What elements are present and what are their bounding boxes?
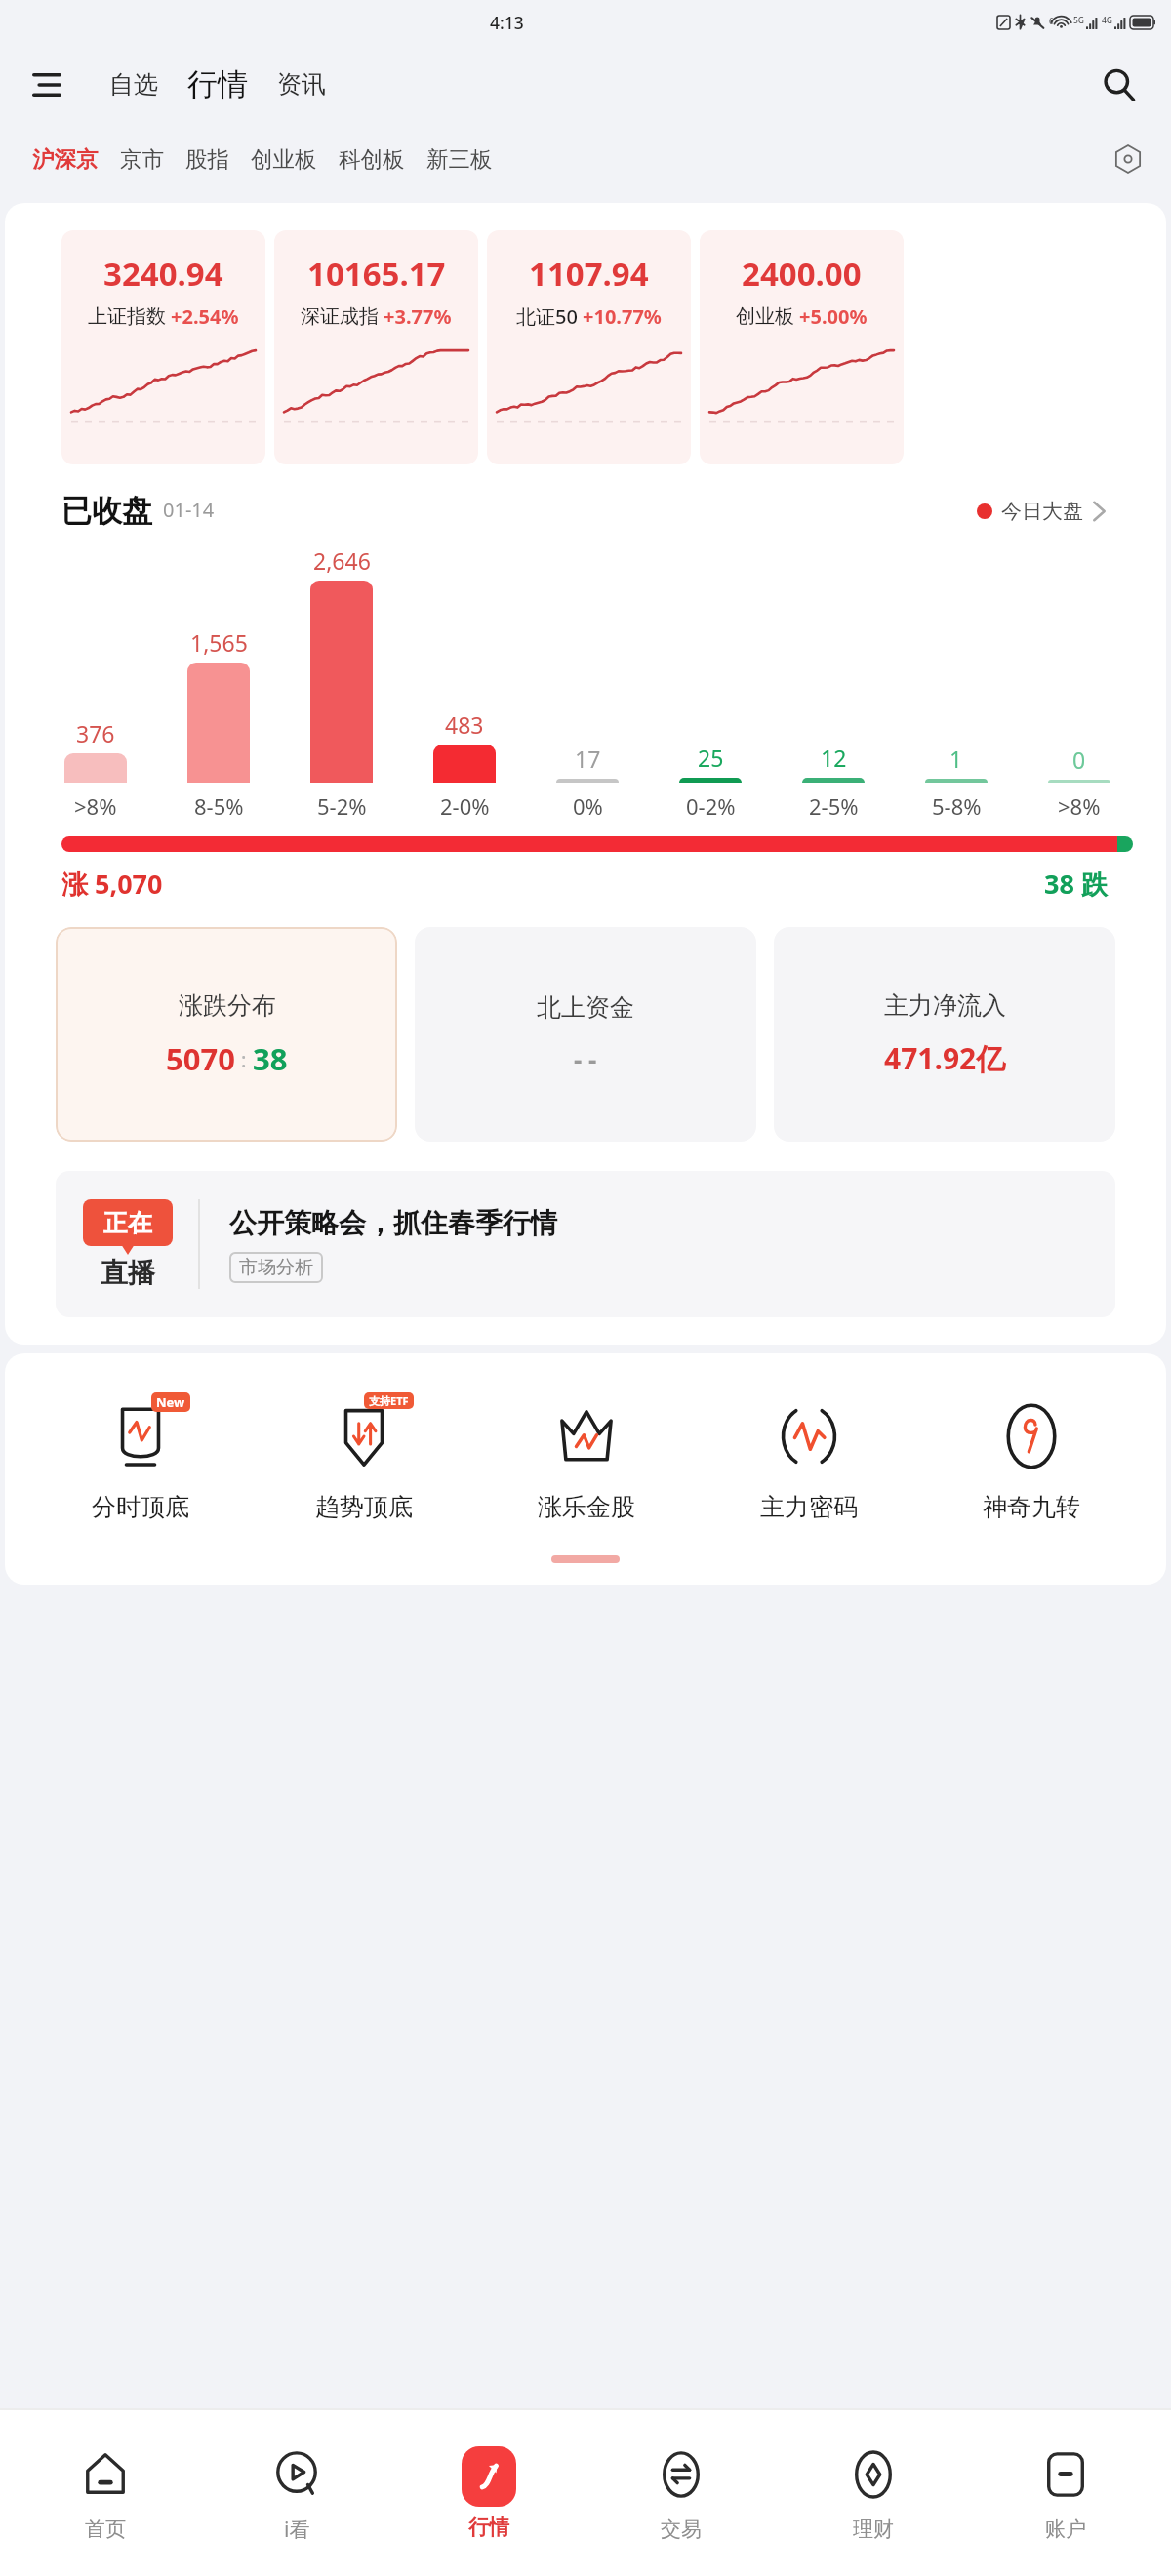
button[interactable]: 涨乐金股 <box>475 1394 698 1522</box>
staticText: 5-2% <box>317 791 367 821</box>
button[interactable]: 今日大盘 <box>973 495 1110 528</box>
staticText: +2.54% <box>171 303 239 330</box>
button[interactable]: 483 <box>403 709 526 821</box>
button[interactable]: 0 <box>1018 745 1141 821</box>
button[interactable]: 主力密码 <box>698 1394 920 1522</box>
staticText: 涨跌分布 <box>179 990 276 1021</box>
button[interactable]: 行情 <box>392 2410 585 2576</box>
button[interactable]: 理财 <box>777 2410 969 2576</box>
staticText: 2400.00 <box>742 252 862 296</box>
staticText: +3.77% <box>384 303 452 330</box>
staticText: New <box>156 1393 185 1411</box>
staticText: 10165.17 <box>307 252 446 296</box>
button[interactable]: 北上资金 <box>415 927 756 1142</box>
button[interactable]: 1,565 <box>157 627 280 821</box>
button[interactable]: 主力净流入 <box>774 927 1115 1142</box>
button[interactable]: 科创板 <box>328 138 416 181</box>
staticText: 科创板 <box>339 145 405 173</box>
button[interactable]: 自选 <box>101 63 166 105</box>
staticText: 趋势顶底 <box>315 1492 413 1522</box>
button[interactable]: 创业板 <box>240 138 328 181</box>
staticText: 0-2% <box>686 791 736 821</box>
button[interactable]: 12 <box>772 743 895 821</box>
staticText: : <box>235 1044 253 1073</box>
staticText: 1,565 <box>190 627 248 658</box>
staticText: 深证成指 <box>301 304 379 329</box>
staticText: 5-8% <box>932 791 982 821</box>
staticText: +5.00% <box>799 303 868 330</box>
staticText: 公开策略会，抓住春季行情 <box>229 1206 557 1240</box>
staticText: 25 <box>698 743 724 773</box>
button[interactable]: 3240.94 <box>61 230 265 464</box>
staticText: 4G <box>1102 15 1113 26</box>
staticText: >8% <box>1058 791 1101 821</box>
button[interactable]: 17 <box>526 744 649 821</box>
button[interactable]: 2400.00 <box>700 230 904 464</box>
staticText: 创业板 <box>251 145 317 173</box>
staticText: 1107.94 <box>529 252 649 296</box>
staticText: 2-0% <box>440 791 490 821</box>
staticText: 股指 <box>185 145 229 173</box>
staticText: 2-5% <box>809 791 859 821</box>
staticText: 上证指数 <box>88 304 166 329</box>
button[interactable]: 25 <box>649 743 772 821</box>
button[interactable]: 行情 <box>180 63 256 105</box>
staticText: 01-14 <box>163 497 215 523</box>
staticText: 0 <box>1072 745 1086 775</box>
staticText: - - <box>574 1042 597 1076</box>
staticText: 新三板 <box>426 145 493 173</box>
button[interactable]: 神奇九转 <box>920 1394 1143 1522</box>
staticText: 市场分析 <box>239 1256 313 1279</box>
button[interactable]: 资讯 <box>269 63 334 105</box>
button[interactable]: 10165.17 <box>274 230 478 464</box>
staticText: >8% <box>74 791 117 821</box>
button[interactable]: 交易 <box>585 2410 777 2576</box>
staticText: 北证50 <box>516 303 578 330</box>
staticText: 神奇九转 <box>983 1492 1080 1522</box>
button[interactable]: Menu <box>25 63 68 106</box>
button[interactable]: Search <box>1095 60 1144 109</box>
staticText: 行情 <box>468 2515 509 2540</box>
button[interactable]: 京市 <box>109 138 175 181</box>
staticText: 涨 5,070 <box>61 865 163 902</box>
button[interactable]: 账户 <box>969 2410 1161 2576</box>
button[interactable]: 沪深京 <box>21 138 109 181</box>
staticText: 376 <box>76 718 115 748</box>
button[interactable]: 股指 <box>175 138 240 181</box>
staticText: 北上资金 <box>537 992 634 1023</box>
staticText: 主力净流入 <box>884 990 1006 1021</box>
staticText: 8-5% <box>194 791 244 821</box>
button[interactable]: 支持ETF <box>252 1394 475 1522</box>
staticText: +10.77% <box>583 303 662 330</box>
staticText: 资讯 <box>277 69 326 100</box>
staticText: i看 <box>284 2516 310 2544</box>
button[interactable]: 376 <box>34 718 157 821</box>
button[interactable] <box>61 836 1133 852</box>
staticText: 6 <box>1049 16 1054 26</box>
staticText: 今日大盘 <box>1001 499 1083 524</box>
staticText: 2,646 <box>313 545 371 576</box>
button[interactable]: 首页 <box>10 2410 201 2576</box>
staticText: 17 <box>575 744 601 774</box>
button[interactable]: 1 <box>895 744 1018 821</box>
staticText: 京市 <box>120 145 164 173</box>
staticText: 1 <box>949 744 963 774</box>
staticText: 创业板 <box>736 304 794 329</box>
staticText: 471.92亿 <box>884 1038 1006 1078</box>
staticText: 支持ETF <box>369 1393 409 1408</box>
button[interactable]: 2,646 <box>280 545 403 821</box>
button[interactable]: 正在 <box>56 1171 1115 1317</box>
button[interactable]: 1107.94 <box>487 230 691 464</box>
staticText: 主力密码 <box>760 1492 858 1522</box>
button[interactable]: 涨跌分布 <box>56 927 397 1142</box>
button[interactable]: More boards <box>1105 136 1151 182</box>
staticText: 涨乐金股 <box>538 1492 635 1522</box>
staticText: 4:13 <box>490 11 524 34</box>
staticText: 12 <box>821 743 847 773</box>
button[interactable]: 新三板 <box>416 138 504 181</box>
staticText: 已收盘 <box>61 492 152 530</box>
staticText: 38 跌 <box>1044 865 1108 902</box>
button[interactable]: New <box>28 1394 252 1522</box>
staticText: 分时顶底 <box>92 1492 189 1522</box>
button[interactable]: i看 <box>201 2410 392 2576</box>
